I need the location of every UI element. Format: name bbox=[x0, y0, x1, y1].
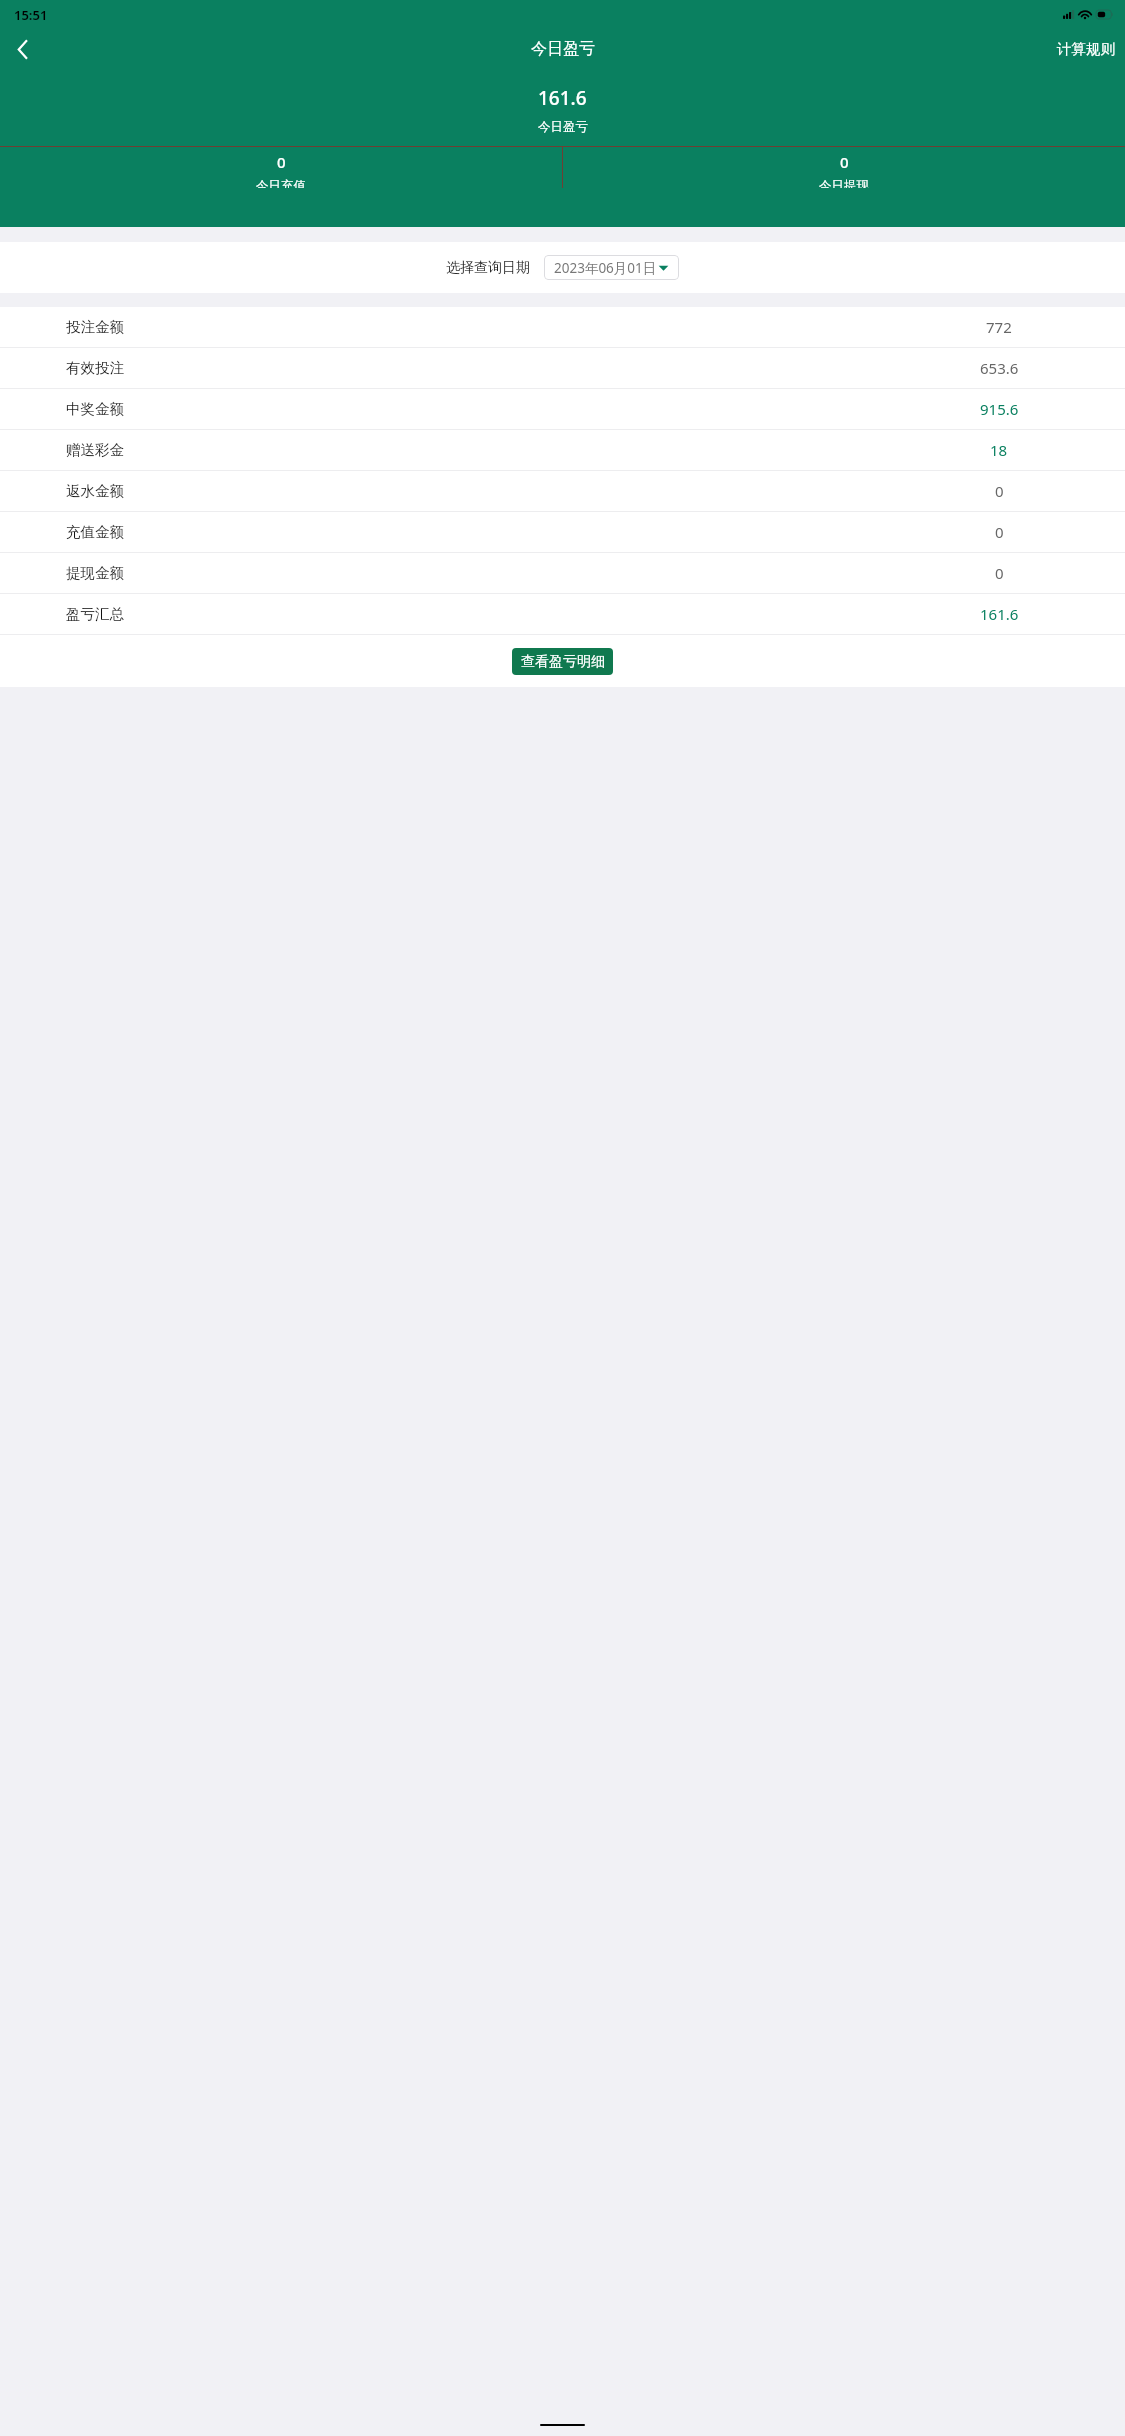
staticText: 返水金额 bbox=[66, 482, 124, 500]
staticText: 今日盈亏 bbox=[531, 39, 595, 59]
staticText: 中奖金额 bbox=[66, 400, 124, 418]
staticText: 充值金额 bbox=[66, 523, 124, 541]
staticText: 选择查询日期 bbox=[446, 259, 530, 277]
button[interactable]: 查看盈亏明细 bbox=[512, 648, 613, 675]
staticText: 18 bbox=[990, 440, 1008, 460]
button[interactable]: 提现金额 bbox=[0, 553, 1125, 593]
button[interactable]: 盈亏汇总 bbox=[0, 594, 1125, 634]
staticText: 查看盈亏明细 bbox=[521, 653, 605, 671]
staticText: 161.6 bbox=[980, 604, 1019, 624]
staticText: 投注金额 bbox=[66, 318, 124, 336]
staticText: 提现金额 bbox=[66, 564, 124, 582]
button[interactable]: 投注金额 bbox=[0, 307, 1125, 347]
button[interactable]: 返水金额 bbox=[0, 471, 1125, 511]
staticText: 653.6 bbox=[980, 358, 1019, 378]
staticText: 盈亏汇总 bbox=[66, 605, 124, 623]
staticText: 有效投注 bbox=[66, 359, 124, 377]
button[interactable]: 赠送彩金 bbox=[0, 430, 1125, 470]
staticText: 今日盈亏 bbox=[538, 119, 588, 135]
button[interactable]: 计算规则 bbox=[1047, 32, 1125, 66]
staticText: 今日提现 bbox=[819, 178, 869, 188]
staticText: 161.6 bbox=[538, 85, 587, 111]
staticText: 0 bbox=[840, 152, 849, 172]
staticText: 2023年06月01日 bbox=[554, 259, 657, 277]
button[interactable]: 有效投注 bbox=[0, 348, 1125, 388]
staticText: 0 bbox=[995, 481, 1004, 501]
staticText: 计算规则 bbox=[1057, 40, 1115, 58]
staticText: 772 bbox=[986, 317, 1012, 337]
staticText: 0 bbox=[277, 152, 286, 172]
button[interactable]: 充值金额 bbox=[0, 512, 1125, 552]
staticText: 今日充值 bbox=[256, 178, 306, 188]
button[interactable]: Back bbox=[0, 29, 44, 69]
staticText: 0 bbox=[995, 522, 1004, 542]
staticText: 0 bbox=[995, 563, 1004, 583]
staticText: 915.6 bbox=[980, 399, 1019, 419]
staticText: 15:51 bbox=[14, 6, 48, 24]
staticText: 赠送彩金 bbox=[66, 441, 124, 459]
button[interactable]: 中奖金额 bbox=[0, 389, 1125, 429]
button[interactable]: 2023年06月01日 bbox=[544, 255, 679, 280]
